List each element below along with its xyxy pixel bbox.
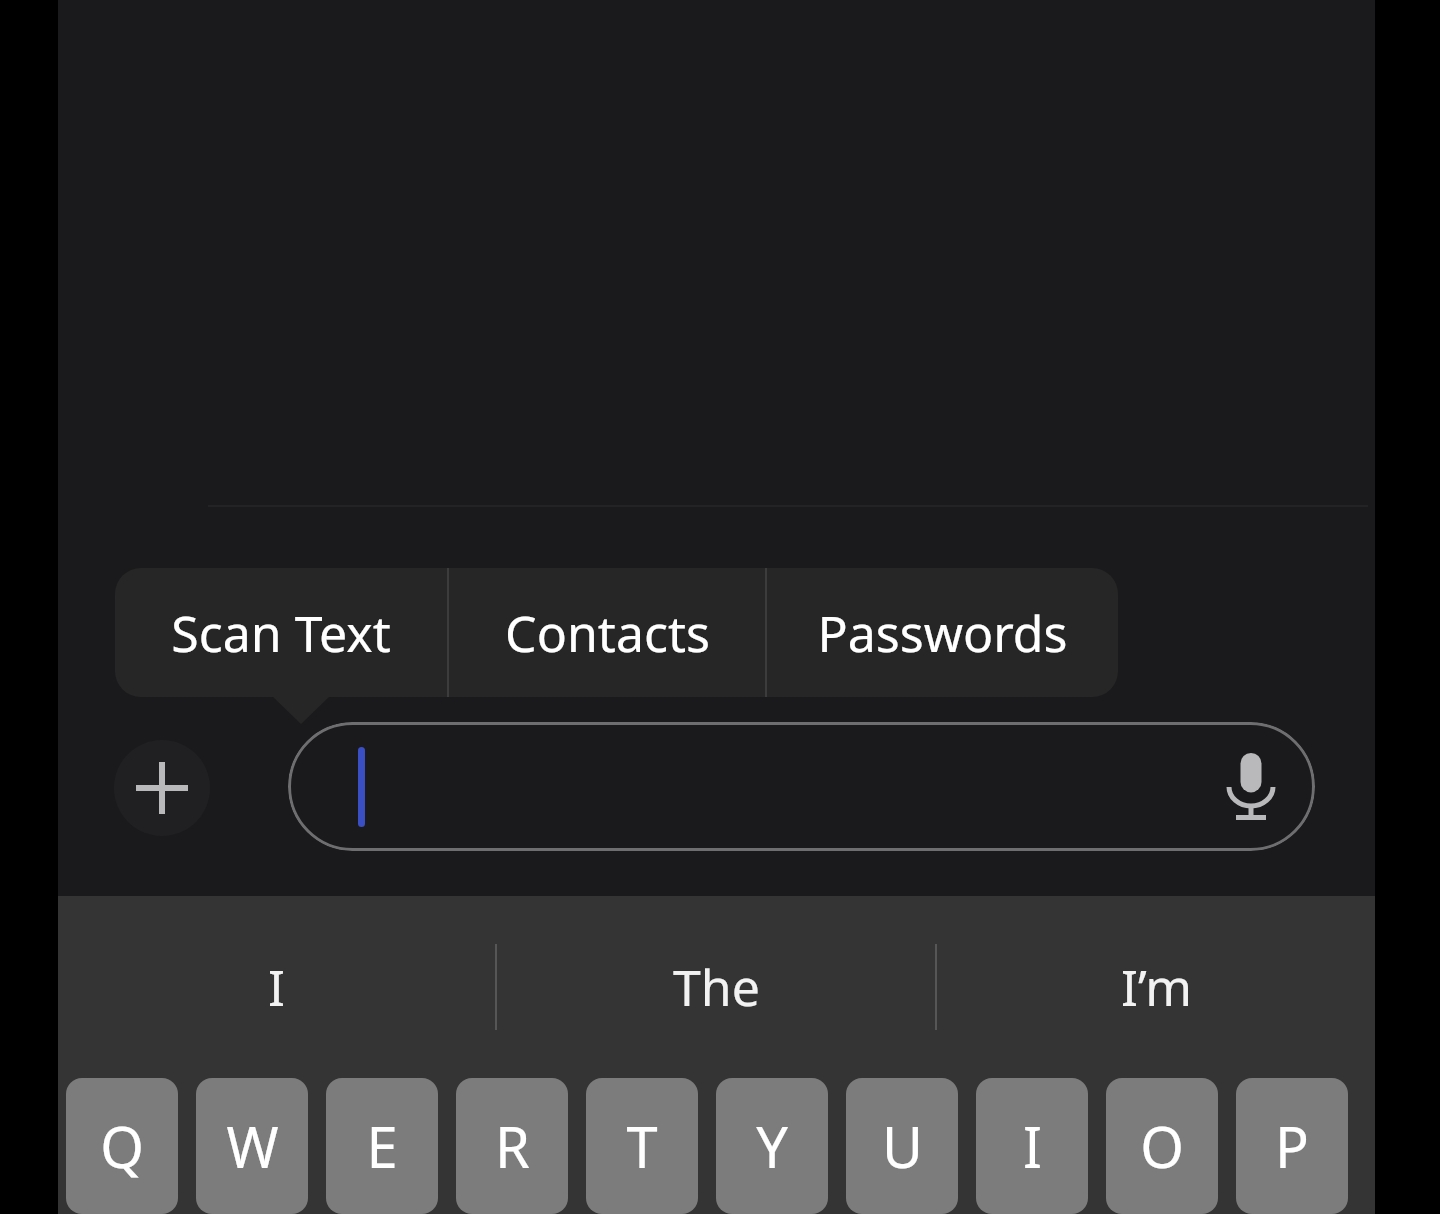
- button[interactable]: Q: [66, 1078, 178, 1214]
- staticText: W: [226, 1108, 279, 1184]
- staticText: R: [495, 1108, 530, 1184]
- staticText: Y: [756, 1108, 788, 1184]
- staticText: I: [268, 953, 285, 1021]
- button[interactable]: The: [497, 896, 935, 1078]
- button[interactable]: T: [586, 1078, 698, 1214]
- button[interactable]: Contacts: [449, 568, 765, 697]
- button[interactable]: R: [456, 1078, 568, 1214]
- button[interactable]: Add attachment: [114, 740, 210, 836]
- staticText: P: [1275, 1108, 1309, 1184]
- staticText: Passwords: [817, 599, 1068, 667]
- staticText: I: [1023, 1108, 1042, 1184]
- button[interactable]: I: [58, 896, 495, 1078]
- button[interactable]: Voice input: [1205, 741, 1297, 833]
- button[interactable]: Passwords: [767, 568, 1118, 697]
- button[interactable]: I: [976, 1078, 1088, 1214]
- staticText: U: [882, 1108, 923, 1184]
- staticText: I’m: [1121, 953, 1192, 1021]
- staticText: O: [1140, 1108, 1184, 1184]
- button[interactable]: W: [196, 1078, 308, 1214]
- staticText: Scan Text: [171, 599, 391, 667]
- staticText: T: [626, 1108, 658, 1184]
- button[interactable]: Voice input: [288, 722, 1315, 851]
- button[interactable]: Scan Text: [115, 568, 447, 697]
- button[interactable]: I’m: [937, 896, 1375, 1078]
- button[interactable]: E: [326, 1078, 438, 1214]
- staticText: Contacts: [505, 599, 710, 667]
- button[interactable]: O: [1106, 1078, 1218, 1214]
- button[interactable]: Y: [716, 1078, 828, 1214]
- button[interactable]: U: [846, 1078, 958, 1214]
- staticText: Q: [100, 1108, 144, 1184]
- staticText: E: [366, 1108, 398, 1184]
- button[interactable]: P: [1236, 1078, 1348, 1214]
- staticText: The: [673, 953, 760, 1021]
